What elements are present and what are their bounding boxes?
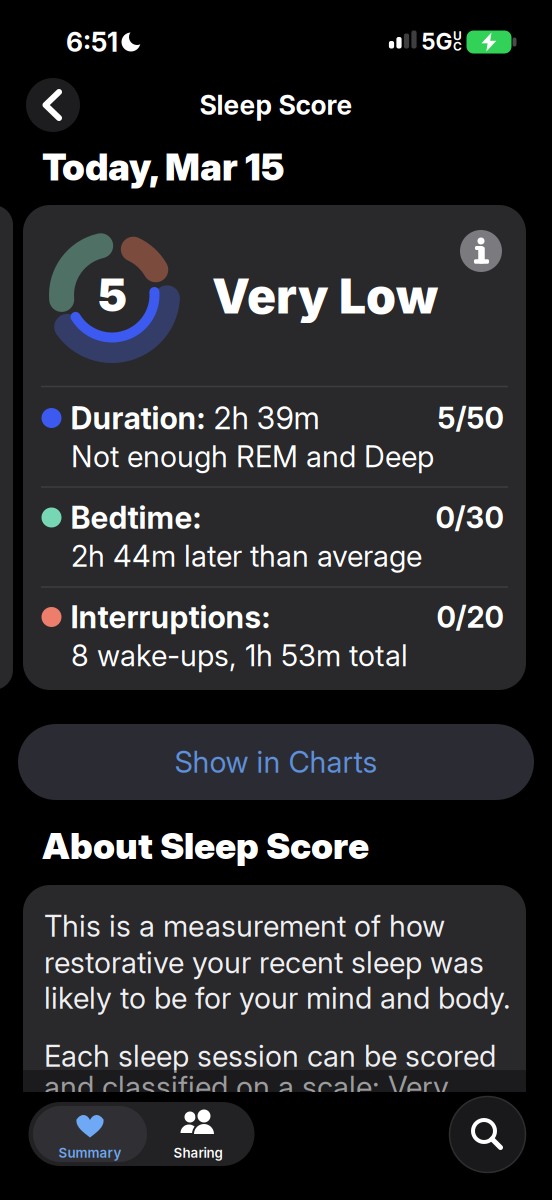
staticText: restorative your recent sleep was — [44, 945, 484, 980]
staticText: Interruptions: — [70, 599, 270, 635]
staticText: and classified on a scale: Very — [44, 1070, 449, 1104]
staticText: Show in Charts — [174, 745, 377, 779]
button[interactable]: Show in Charts — [18, 724, 534, 800]
staticText: About Sleep Score — [42, 825, 369, 867]
staticText: This is a measurement of how — [44, 909, 445, 943]
staticText: 8 wake-ups, 1h 53m total — [71, 638, 408, 673]
button[interactable]: Search — [449, 1096, 525, 1172]
staticText: 0/20 — [436, 600, 503, 634]
staticText: Duration: — [70, 400, 205, 436]
staticText: 6:51 — [66, 26, 118, 58]
staticText: Today, Mar 15 — [42, 145, 284, 189]
staticText: 2h 44m later than average — [71, 539, 422, 573]
staticText: Not enough REM and Deep — [71, 439, 434, 474]
staticText: 2h 39m — [205, 400, 319, 436]
staticText: 0/30 — [435, 500, 503, 535]
button[interactable]: Back — [26, 78, 80, 132]
staticText: Bedtime: — [70, 499, 201, 536]
staticText: 5/50 — [437, 401, 503, 435]
staticText: Sharing — [173, 1145, 222, 1161]
staticText: Each sleep session can be scored — [44, 1039, 496, 1073]
staticText: U — [453, 29, 462, 43]
button[interactable]: Sharing — [142, 1102, 254, 1166]
staticText: 5G — [421, 28, 452, 55]
staticText: C — [453, 39, 462, 54]
staticText: Very Low — [212, 268, 438, 324]
staticText: likely to be for your mind and body. — [44, 981, 511, 1015]
button[interactable]: Summary — [33, 1102, 147, 1166]
button[interactable]: Info — [460, 230, 502, 272]
staticText: 5 — [97, 268, 127, 322]
staticText: Sleep Score — [199, 89, 352, 121]
staticText: Summary — [58, 1145, 121, 1161]
